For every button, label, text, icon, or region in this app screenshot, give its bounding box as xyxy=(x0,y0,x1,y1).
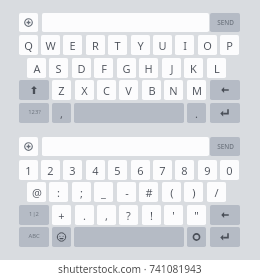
button[interactable]: Degree xyxy=(187,227,206,247)
button[interactable]: Z xyxy=(52,80,71,100)
button[interactable]: G xyxy=(117,58,136,78)
button[interactable]: + xyxy=(52,205,71,225)
button[interactable]: 123? xyxy=(19,103,49,123)
staticText: . xyxy=(83,208,86,223)
button[interactable]: - xyxy=(117,182,136,202)
button[interactable]: 0 xyxy=(220,160,239,180)
staticText: ; xyxy=(80,185,83,200)
button[interactable]: Backspace xyxy=(210,205,240,225)
staticText: 123? xyxy=(28,108,41,116)
button[interactable]: / xyxy=(207,182,226,202)
button[interactable]: ) xyxy=(184,182,203,202)
button[interactable]: U xyxy=(153,35,172,55)
button[interactable]: Add attachment xyxy=(19,13,38,32)
button[interactable]: W xyxy=(41,35,60,55)
button[interactable]: @ xyxy=(27,182,46,202)
button[interactable]: Y xyxy=(131,35,150,55)
button[interactable]: Backspace xyxy=(210,80,240,100)
button[interactable]: ( xyxy=(162,182,181,202)
button[interactable]: L xyxy=(207,58,226,78)
button[interactable]: , xyxy=(97,205,116,225)
button[interactable]: I xyxy=(175,35,194,55)
button[interactable]: A xyxy=(27,58,46,78)
staticText: P xyxy=(226,38,233,53)
button[interactable]: 1 xyxy=(19,160,38,180)
button[interactable]: F xyxy=(94,58,113,78)
button[interactable]: 4 xyxy=(86,160,105,180)
staticText: F xyxy=(101,61,107,76)
staticText: shutterstock.com · 741081943 xyxy=(58,262,202,276)
button[interactable]: B xyxy=(142,80,161,100)
button[interactable]: 9 xyxy=(198,160,217,180)
staticText: M xyxy=(192,83,202,98)
button[interactable]: H xyxy=(139,58,158,78)
staticText: 4 xyxy=(92,163,99,178)
button[interactable]: SEND xyxy=(210,13,240,32)
button[interactable]: SEND xyxy=(210,137,240,156)
button[interactable]: # xyxy=(139,182,158,202)
button[interactable]: Emoji xyxy=(52,227,71,247)
button[interactable]: Shift xyxy=(19,80,49,100)
button[interactable]: Q xyxy=(19,35,38,55)
staticText: 1|2 xyxy=(29,210,39,218)
staticText: ' xyxy=(172,208,175,223)
button[interactable]: , xyxy=(52,103,71,123)
staticText: V xyxy=(125,83,132,98)
staticText: # xyxy=(145,185,153,200)
button[interactable]: D xyxy=(72,58,91,78)
button[interactable]: : xyxy=(49,182,68,202)
button[interactable]: . xyxy=(187,103,206,123)
button[interactable]: S xyxy=(49,58,68,78)
button[interactable]: 1|2 xyxy=(19,205,49,225)
button[interactable]: 8 xyxy=(175,160,194,180)
button[interactable]: 7 xyxy=(153,160,172,180)
staticText: X xyxy=(81,83,88,98)
button[interactable]: K xyxy=(184,58,203,78)
staticText: U xyxy=(158,38,167,53)
button[interactable]: R xyxy=(86,35,105,55)
button[interactable]: ? xyxy=(119,205,138,225)
staticText: ABC xyxy=(28,232,40,240)
staticText: C xyxy=(103,83,110,98)
staticText: SEND xyxy=(217,142,234,151)
staticText: SEND xyxy=(217,18,234,27)
button[interactable]: X xyxy=(75,80,94,100)
button[interactable]: _ xyxy=(94,182,113,202)
staticText: I xyxy=(183,38,187,53)
staticText: 0 xyxy=(226,163,233,178)
staticText: 1 xyxy=(25,163,32,178)
button[interactable]: Add attachment xyxy=(19,137,38,156)
button[interactable]: T xyxy=(108,35,127,55)
button[interactable]: ' xyxy=(164,205,183,225)
button[interactable]: E xyxy=(63,35,82,55)
button[interactable]: 5 xyxy=(108,160,127,180)
staticText: T xyxy=(114,38,121,53)
staticText: E xyxy=(69,38,76,53)
button[interactable]: 2 xyxy=(41,160,60,180)
button[interactable]: Enter xyxy=(210,103,240,123)
staticText: ( xyxy=(170,185,174,200)
button[interactable]: " xyxy=(187,205,206,225)
staticText: / xyxy=(214,185,219,200)
staticText: L xyxy=(214,61,220,76)
button[interactable]: N xyxy=(164,80,183,100)
button[interactable]: V xyxy=(119,80,138,100)
button[interactable]: ! xyxy=(142,205,161,225)
button[interactable]: ABC xyxy=(19,227,49,247)
button[interactable]: P xyxy=(220,35,239,55)
button[interactable]: J xyxy=(162,58,181,78)
button[interactable]: O xyxy=(198,35,217,55)
button[interactable]: M xyxy=(187,80,206,100)
staticText: R xyxy=(92,38,99,53)
button[interactable]: ; xyxy=(72,182,91,202)
button[interactable]: 6 xyxy=(131,160,150,180)
button[interactable]: C xyxy=(97,80,116,100)
button[interactable]: . xyxy=(75,205,94,225)
button[interactable]: Enter xyxy=(210,227,240,247)
button[interactable]: 3 xyxy=(63,160,82,180)
staticText: A xyxy=(33,61,41,76)
